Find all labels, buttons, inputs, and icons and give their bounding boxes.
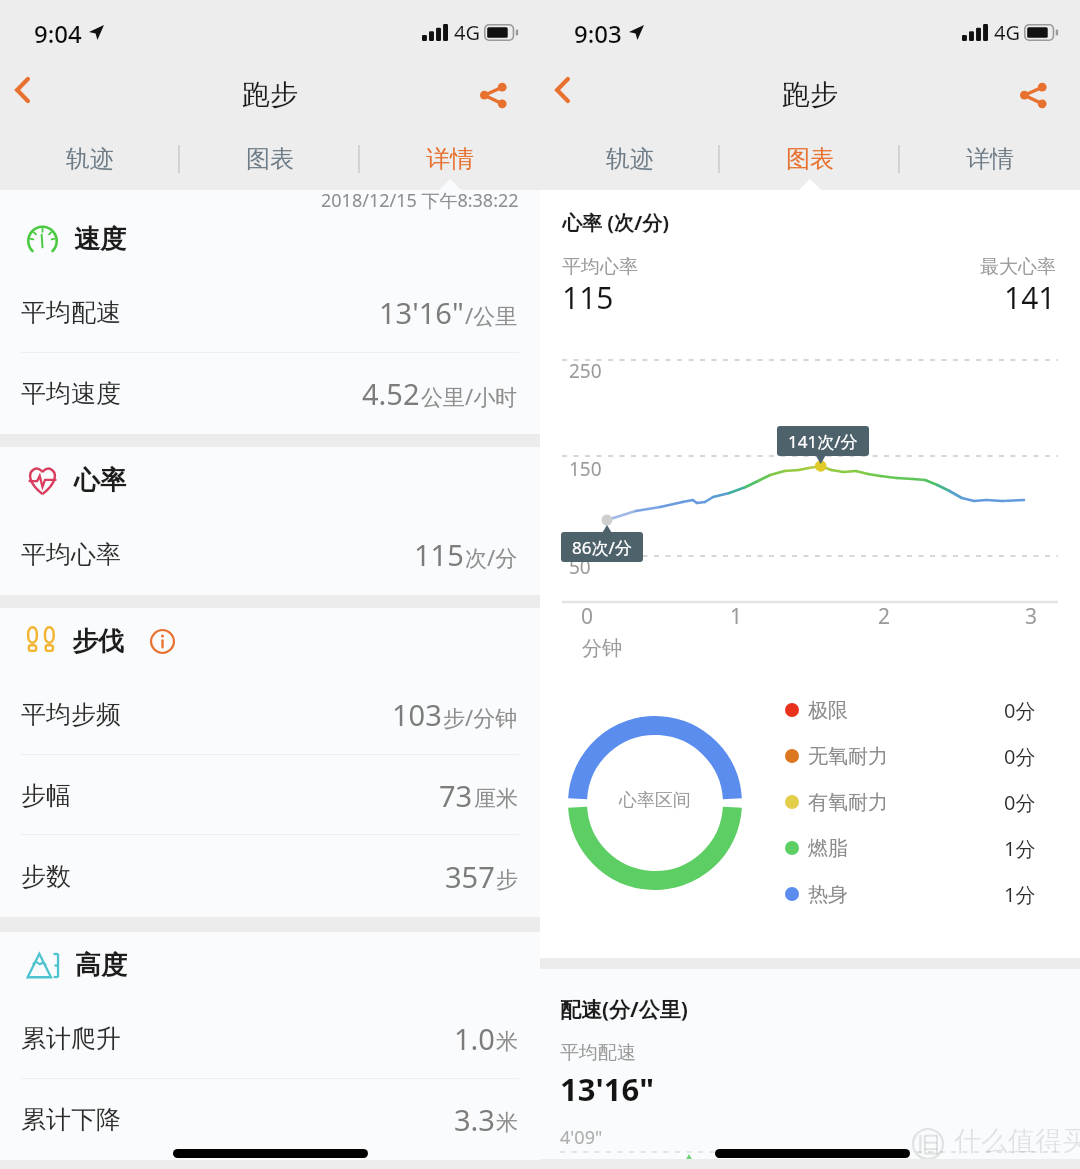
staticText: /公里 — [465, 300, 518, 330]
staticText: 115 — [562, 277, 614, 318]
staticText: 0 — [581, 602, 594, 631]
button[interactable]: 累计下降 — [0, 1079, 540, 1160]
button[interactable]: 步幅 — [0, 755, 540, 835]
staticText: 步/分钟 — [443, 702, 518, 732]
staticText: 步 — [496, 866, 518, 894]
staticText: 轨迹 — [66, 144, 114, 174]
staticText: 4'09" — [560, 1125, 603, 1150]
button[interactable]: 平均步频 — [0, 674, 540, 755]
staticText: 73 — [439, 776, 473, 815]
staticText: 心率 (次/分) — [562, 209, 670, 236]
staticText: 米 — [496, 1109, 518, 1137]
staticText: 心率区间 — [619, 789, 691, 812]
button[interactable]: 详情 — [900, 128, 1080, 190]
staticText: 平均配速 — [560, 1041, 636, 1065]
staticText: 步数 — [21, 861, 71, 892]
staticText: 累计下降 — [21, 1104, 121, 1135]
staticText: 最大心率 — [980, 255, 1056, 279]
staticText: 86次/分 — [572, 536, 632, 559]
staticText: 3 — [1025, 602, 1038, 631]
button[interactable]: 累计爬升 — [0, 998, 540, 1079]
staticText: 2 — [878, 602, 891, 631]
staticText: 平均步频 — [21, 699, 121, 730]
staticText: 平均心率 — [562, 255, 638, 279]
staticText: 9:04 — [34, 17, 82, 48]
staticText: 燃脂 — [808, 836, 848, 861]
staticText: 9:03 — [574, 17, 622, 48]
staticText: 141次/分 — [788, 430, 858, 453]
staticText: 0分 — [1004, 743, 1036, 770]
button[interactable]: 平均速度 — [0, 353, 540, 434]
button[interactable]: 热身 — [785, 871, 1036, 917]
staticText: 357 — [445, 857, 495, 896]
staticText: 1分 — [1004, 835, 1036, 862]
button[interactable]: 平均配速 — [0, 272, 540, 353]
button[interactable]: 无氧耐力 — [785, 733, 1036, 779]
staticText: 速度 — [74, 223, 126, 256]
staticText: 分钟 — [582, 636, 622, 661]
staticText: 平均心率 — [21, 539, 121, 570]
staticText: 次/分 — [465, 542, 518, 572]
staticText: 13'16" — [560, 1068, 655, 1110]
staticText: 平均速度 — [21, 378, 121, 409]
button[interactable]: Back — [540, 60, 602, 120]
staticText: 详情 — [966, 144, 1014, 174]
staticText: 1 — [730, 602, 743, 631]
staticText: 1.0 — [454, 1019, 495, 1058]
staticText: 141 — [1004, 277, 1056, 318]
button[interactable]: 有氧耐力 — [785, 779, 1036, 825]
staticText: 配速(分/公里) — [560, 995, 688, 1024]
button[interactable]: Back — [0, 60, 62, 120]
staticText: 13'16" — [379, 293, 464, 332]
staticText: 心率 — [74, 464, 126, 497]
staticText: 4G — [454, 19, 480, 46]
staticText: 无氧耐力 — [808, 744, 888, 769]
button[interactable]: 燃脂 — [785, 825, 1036, 871]
button[interactable]: 轨迹 — [540, 128, 720, 190]
button[interactable]: 图表 — [180, 128, 360, 190]
staticText: 极限 — [808, 698, 848, 723]
staticText: 跑步 — [242, 77, 298, 112]
staticText: 250 — [569, 358, 602, 384]
button[interactable]: 详情 — [360, 128, 540, 190]
staticText: 图表 — [246, 144, 294, 174]
staticText: 厘米 — [474, 785, 518, 813]
staticText: 有氧耐力 — [808, 790, 888, 815]
button[interactable]: 平均心率 — [0, 513, 540, 595]
staticText: 3.3 — [454, 1100, 495, 1139]
button[interactable]: 步数 — [0, 835, 540, 917]
staticText: 步幅 — [21, 780, 71, 811]
staticText: 0分 — [1004, 789, 1036, 816]
staticText: 103 — [392, 695, 442, 734]
staticText: 详情 — [426, 144, 474, 174]
button[interactable]: 极限 — [785, 687, 1036, 733]
staticText: 0分 — [1004, 697, 1036, 724]
staticText: 高度 — [75, 949, 127, 982]
button[interactable]: Share — [1008, 60, 1080, 120]
button[interactable]: 轨迹 — [0, 128, 180, 190]
staticText: 150 — [569, 456, 602, 482]
staticText: 1分 — [1004, 881, 1036, 908]
staticText: 累计爬升 — [21, 1023, 121, 1054]
staticText: 4.52 — [362, 374, 420, 413]
button[interactable]: Info — [142, 621, 182, 661]
staticText: 轨迹 — [606, 144, 654, 174]
staticText: 4G — [994, 19, 1020, 46]
staticText: 公里/小时 — [421, 381, 518, 411]
staticText: 跑步 — [782, 77, 838, 112]
button[interactable]: Share — [468, 60, 540, 120]
staticText: 热身 — [808, 882, 848, 907]
staticText: 115 — [414, 535, 464, 574]
button[interactable]: 图表 — [720, 128, 900, 190]
staticText: 米 — [496, 1028, 518, 1056]
staticText: 2018/12/15 下午8:38:22 — [321, 188, 519, 210]
staticText: 步伐 — [72, 625, 124, 658]
staticText: 50 — [569, 554, 591, 580]
staticText: 图表 — [786, 144, 834, 174]
staticText: 什么值得买 — [954, 1124, 1080, 1158]
staticText: 平均配速 — [21, 297, 121, 328]
